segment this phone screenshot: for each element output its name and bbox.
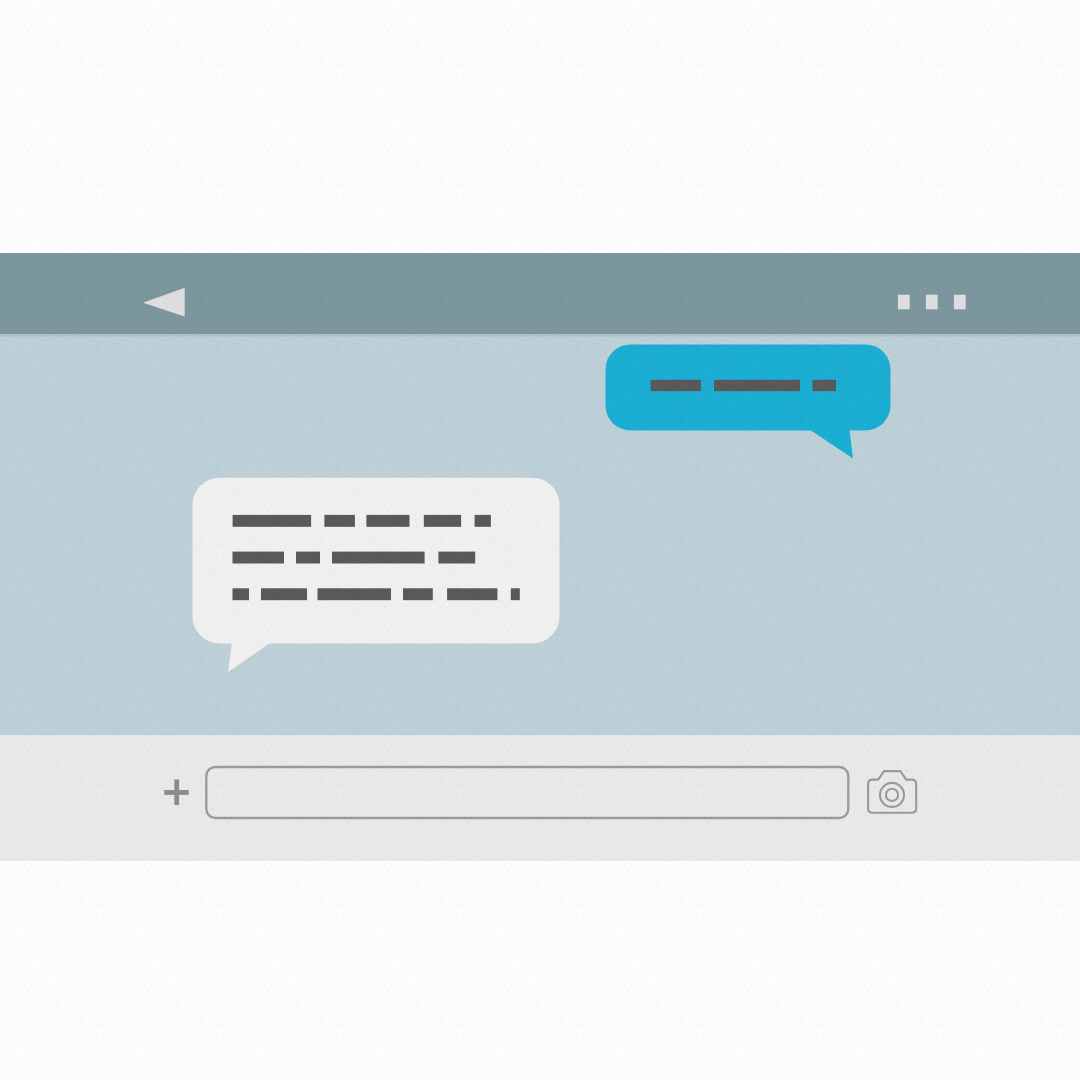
button[interactable]: More options <box>882 279 982 325</box>
button[interactable]: Back <box>123 270 205 334</box>
button[interactable]: Message input <box>204 764 850 820</box>
button[interactable]: Camera <box>856 760 928 824</box>
button[interactable]: Add attachment <box>152 767 200 815</box>
